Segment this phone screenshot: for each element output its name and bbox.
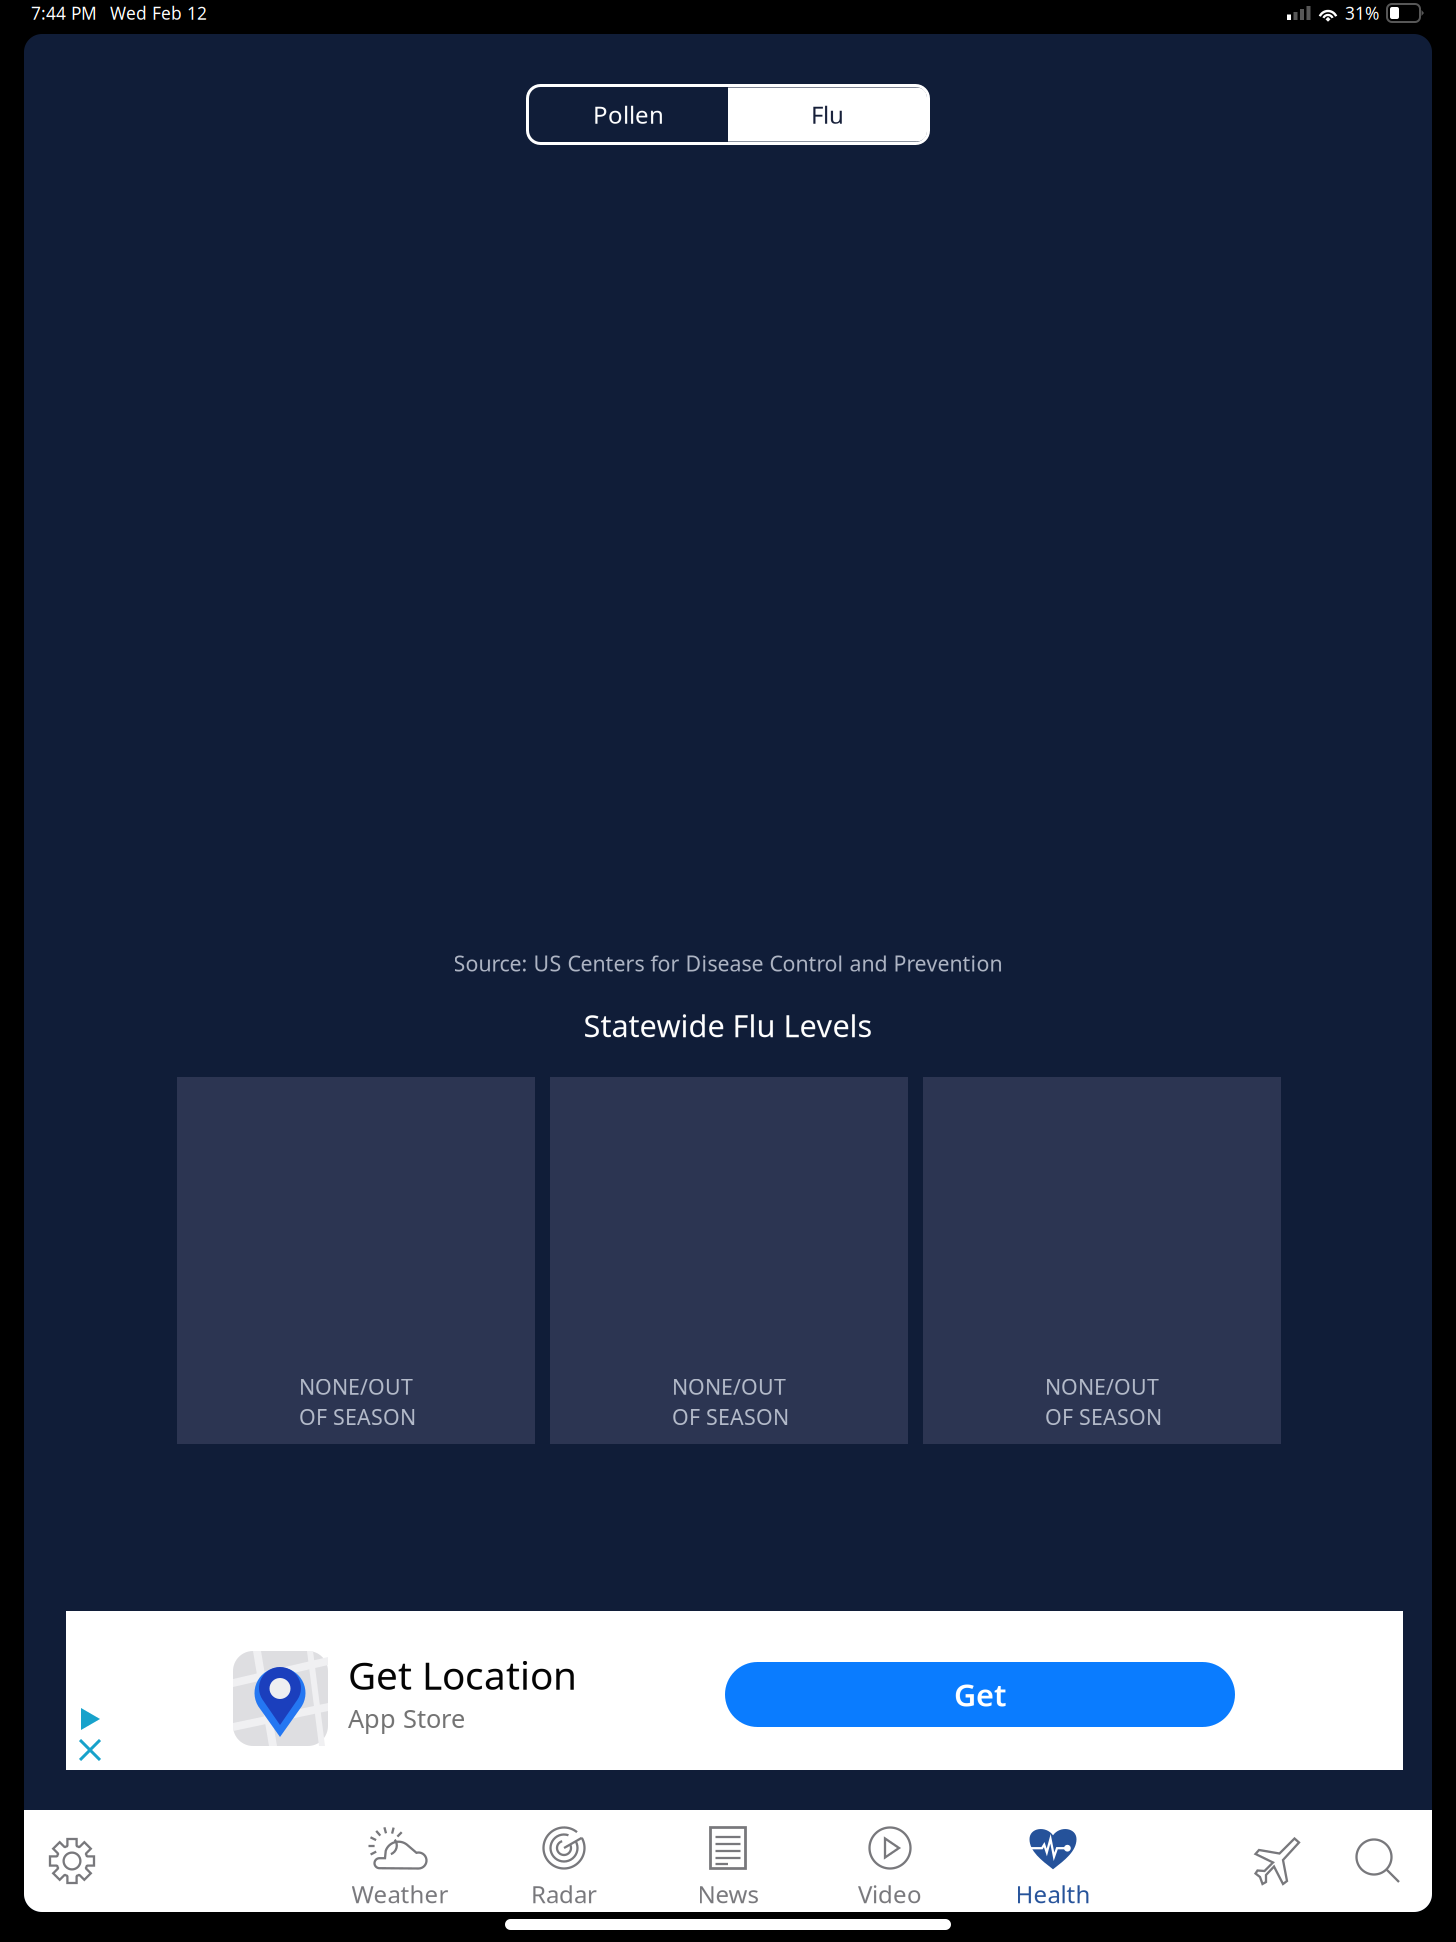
staticText: 7:44 PM — [31, 1, 97, 24]
button[interactable]: Search — [1343, 1810, 1413, 1912]
staticText: Wed Feb 12 — [110, 1, 207, 24]
button[interactable]: Settings — [37, 1810, 107, 1912]
staticText: NONE/OUT — [1045, 1372, 1159, 1401]
staticText: App Store — [348, 1701, 465, 1735]
button[interactable]: Weather — [318, 1810, 482, 1912]
staticText: OF SEASON — [299, 1403, 416, 1431]
staticText: Pollen — [593, 99, 664, 130]
staticText: Video — [858, 1878, 922, 1910]
staticText: News — [697, 1878, 758, 1910]
staticText: Statewide Flu Levels — [583, 1005, 872, 1046]
staticText: Get Location — [348, 1649, 577, 1700]
staticText: Weather — [351, 1878, 448, 1910]
button[interactable]: Health — [971, 1810, 1135, 1912]
staticText: 31% — [1345, 1, 1379, 24]
staticText: Flu — [811, 99, 844, 130]
staticText: Health — [1015, 1878, 1090, 1910]
button[interactable]: Flight tracker — [1243, 1810, 1313, 1912]
button[interactable]: NONE/OUT — [923, 1077, 1281, 1444]
button[interactable]: Radar — [482, 1810, 646, 1912]
button[interactable]: Flu — [728, 87, 927, 142]
staticText: Get — [954, 1674, 1006, 1715]
staticText: Radar — [531, 1878, 597, 1910]
button[interactable]: NONE/OUT — [177, 1077, 535, 1444]
staticText: OF SEASON — [672, 1403, 789, 1431]
staticText: Source: US Centers for Disease Control a… — [453, 949, 1002, 977]
button[interactable]: Get — [725, 1662, 1235, 1727]
staticText: NONE/OUT — [672, 1372, 786, 1401]
staticText: OF SEASON — [1045, 1403, 1162, 1431]
button[interactable]: NONE/OUT — [550, 1077, 908, 1444]
button[interactable]: Pollen — [529, 87, 728, 142]
button[interactable]: Video — [808, 1810, 972, 1912]
staticText: NONE/OUT — [299, 1372, 413, 1401]
button[interactable]: News — [646, 1810, 810, 1912]
